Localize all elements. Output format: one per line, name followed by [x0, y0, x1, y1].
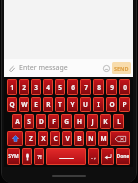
staticText: 8 — [97, 83, 101, 92]
button[interactable]: Backspace — [110, 131, 130, 146]
button[interactable]: A — [12, 114, 22, 129]
staticText: S — [27, 117, 31, 126]
button[interactable]: 6 — [67, 79, 78, 95]
button[interactable]: . , — [88, 148, 99, 165]
staticText: ?! — [37, 153, 42, 161]
staticText: 3 — [34, 83, 38, 92]
staticText: 2 — [22, 83, 26, 92]
button[interactable]: W — [19, 97, 29, 112]
staticText: D — [39, 117, 44, 126]
button[interactable]: N — [86, 131, 96, 146]
staticText: N — [88, 134, 94, 143]
button[interactable]: R — [43, 97, 53, 112]
staticText: M — [100, 134, 107, 143]
staticText: Z — [29, 134, 33, 143]
button[interactable]: I — [93, 97, 104, 112]
button[interactable]: Z — [25, 131, 36, 146]
button[interactable]: 9 — [106, 79, 117, 95]
button[interactable]: P — [119, 97, 130, 112]
button[interactable]: V — [62, 131, 72, 146]
button[interactable]: J — [87, 114, 98, 129]
button[interactable]: Shift — [7, 131, 23, 146]
button[interactable]: E — [31, 97, 41, 112]
staticText: G — [64, 117, 69, 126]
button[interactable]: Attach file — [7, 64, 16, 73]
button[interactable]: Done — [116, 148, 130, 165]
button[interactable]: F — [48, 114, 59, 129]
button[interactable]: 4 — [43, 79, 53, 95]
staticText: X — [41, 134, 46, 143]
staticText: 4 — [46, 83, 50, 92]
staticText: 6 — [71, 83, 75, 92]
staticText: W — [21, 100, 28, 109]
button[interactable]: Emoji — [101, 63, 112, 74]
staticText: C — [53, 134, 58, 143]
staticText: V — [65, 134, 70, 143]
staticText: SEND — [114, 65, 129, 72]
button[interactable]: 3 — [31, 79, 41, 95]
staticText: O — [109, 100, 115, 109]
button[interactable]: 7 — [80, 79, 91, 95]
button[interactable]: U — [80, 97, 91, 112]
staticText: P — [122, 100, 127, 109]
staticText: SYM — [8, 153, 19, 160]
button[interactable]: M — [98, 131, 108, 146]
staticText: . , — [91, 153, 96, 160]
staticText: 9 — [110, 83, 114, 92]
staticText: 7 — [84, 83, 88, 92]
staticText: I — [97, 100, 100, 109]
button[interactable]: 0 — [119, 79, 130, 95]
button[interactable]: SYM — [7, 148, 20, 165]
button[interactable]: Y — [67, 97, 78, 112]
button[interactable]: 1 — [7, 79, 17, 95]
button[interactable]: L — [113, 114, 124, 129]
button[interactable]: ?! — [34, 148, 44, 165]
button[interactable]: C — [50, 131, 60, 146]
staticText: K — [103, 117, 108, 126]
staticText: Enter message — [19, 63, 101, 73]
staticText: L — [117, 117, 121, 126]
button[interactable]: O — [106, 97, 117, 112]
button[interactable]: B — [74, 131, 84, 146]
button[interactable]: SEND — [112, 62, 131, 74]
button[interactable]: X — [38, 131, 48, 146]
button[interactable]: G — [61, 114, 72, 129]
staticText: E — [34, 100, 38, 109]
staticText: A — [15, 117, 20, 126]
staticText: Q — [9, 100, 15, 109]
staticText: R — [46, 100, 51, 109]
staticText: H — [77, 117, 82, 126]
button[interactable]: S — [24, 114, 34, 129]
staticText: 5 — [58, 83, 62, 92]
button[interactable]: Space — [46, 148, 86, 165]
button[interactable]: 5 — [55, 79, 65, 95]
button[interactable]: Q — [7, 97, 17, 112]
button[interactable]: H — [74, 114, 85, 129]
staticText: Y — [70, 100, 75, 109]
button[interactable]: 8 — [93, 79, 104, 95]
staticText: J — [91, 117, 94, 126]
button[interactable]: T — [55, 97, 65, 112]
staticText: 1 — [10, 83, 14, 92]
staticText: T — [58, 100, 62, 109]
button[interactable]: Enter — [101, 148, 114, 165]
button[interactable]: K — [100, 114, 111, 129]
staticText: B — [77, 134, 82, 143]
staticText: F — [52, 117, 56, 126]
staticText: 0 — [123, 83, 127, 92]
button[interactable]: D — [36, 114, 46, 129]
button[interactable]: Voice input — [22, 148, 32, 165]
staticText: Done — [116, 153, 130, 160]
staticText: U — [83, 100, 88, 109]
button[interactable]: 2 — [19, 79, 29, 95]
